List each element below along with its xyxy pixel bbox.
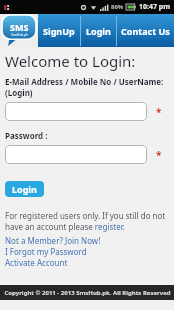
button[interactable] — [5, 102, 147, 121]
staticText: Password : — [5, 130, 48, 141]
button[interactable]: Login — [81, 14, 116, 47]
staticText: Copyright © 2011 - 2013 SmsHub.pk. All R… — [4, 289, 171, 297]
staticText: E-Mail Address / Mobile No / UserName: (… — [5, 76, 164, 98]
staticText: SmsHub.pk — [11, 33, 28, 37]
button[interactable]: Activate Account — [5, 257, 169, 268]
staticText: For registered users only. If you still … — [5, 210, 169, 232]
staticText: 86% — [111, 3, 124, 11]
staticText: * — [156, 148, 162, 162]
staticText: * — [156, 105, 162, 119]
button[interactable]: Not a Member? Join Now! — [5, 235, 169, 246]
staticText: 10:47 pm — [139, 2, 171, 12]
button[interactable]: SignUp — [38, 14, 80, 47]
staticText: Login — [86, 25, 111, 37]
staticText: Not a Member? Join Now! — [5, 235, 101, 246]
staticText: I Forgot my Password — [5, 246, 87, 257]
button[interactable]: Contact Us — [117, 14, 174, 47]
staticText: Activate Account — [5, 257, 68, 268]
staticText: Login — [12, 183, 37, 195]
button[interactable]: I Forgot my Password — [5, 246, 169, 257]
staticText: Welcome to Login: — [5, 51, 136, 71]
staticText: SMS — [10, 21, 29, 33]
button[interactable]: SmsHub home — [2, 15, 36, 46]
button[interactable]: Login — [5, 181, 44, 197]
staticText: Contact Us — [121, 25, 170, 37]
staticText: SignUp — [43, 25, 75, 37]
button[interactable] — [5, 145, 147, 164]
